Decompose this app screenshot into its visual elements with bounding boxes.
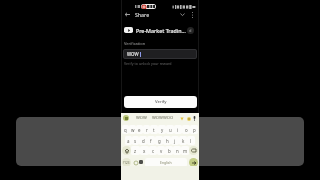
button[interactable]: s xyxy=(132,136,139,145)
staticText: Verification xyxy=(124,41,146,46)
button[interactable]: Channel avatar xyxy=(187,27,194,34)
button[interactable]: n xyxy=(173,146,181,155)
staticText: r xyxy=(146,127,148,133)
staticText: j xyxy=(174,138,176,144)
button[interactable]: o xyxy=(182,125,190,134)
button[interactable]: Back xyxy=(123,10,132,19)
button[interactable]: e xyxy=(136,125,143,134)
staticText: WOW xyxy=(127,51,139,57)
staticText: WOW xyxy=(136,115,147,121)
staticText: f xyxy=(150,138,152,144)
button[interactable]: z xyxy=(131,146,140,155)
button[interactable]: f xyxy=(147,136,155,145)
button[interactable]: Clipboard xyxy=(139,160,143,164)
staticText: WOWWOO xyxy=(152,115,174,121)
button[interactable]: w xyxy=(129,125,136,134)
staticText: n xyxy=(176,148,179,154)
button[interactable]: More options xyxy=(188,10,197,19)
button[interactable]: r xyxy=(143,125,150,134)
staticText: x xyxy=(143,148,146,154)
button[interactable]: c xyxy=(149,146,157,155)
button[interactable]: Google xyxy=(123,115,129,121)
staticText: Verify xyxy=(155,99,167,105)
button[interactable]: Sticker xyxy=(179,116,184,121)
staticText: Pre-Market Tradin… xyxy=(136,27,186,34)
staticText: p xyxy=(193,127,196,133)
staticText: Verify to unlock your reward xyxy=(124,61,172,66)
staticText: v xyxy=(160,148,163,154)
button[interactable]: Enter xyxy=(189,158,198,167)
staticText: u xyxy=(169,127,172,133)
button[interactable]: j xyxy=(171,136,179,145)
staticText: h xyxy=(166,138,169,144)
staticText: a xyxy=(127,138,130,144)
button[interactable]: Backspace xyxy=(189,146,198,155)
staticText: t xyxy=(153,127,155,133)
button[interactable]: i xyxy=(174,125,182,134)
staticText: y xyxy=(161,127,164,133)
staticText: d xyxy=(189,28,192,33)
button[interactable]: k xyxy=(179,136,187,145)
staticText: d xyxy=(142,138,145,144)
staticText: m xyxy=(183,148,188,154)
button[interactable]: Voice input xyxy=(192,116,197,121)
button[interactable]: g xyxy=(155,136,163,145)
button[interactable]: v xyxy=(157,146,165,155)
button[interactable]: a xyxy=(125,136,132,145)
button[interactable]: Emoji xyxy=(133,160,138,165)
button[interactable]: h xyxy=(163,136,171,145)
button[interactable]: u xyxy=(166,125,174,134)
button[interactable]: q xyxy=(122,125,129,134)
button[interactable]: Verify xyxy=(124,96,197,108)
staticText: k xyxy=(182,138,185,144)
staticText: b xyxy=(168,148,171,154)
button[interactable]: x xyxy=(140,146,149,155)
button[interactable]: Pre-Market Tradin… xyxy=(124,23,196,37)
button[interactable]: d xyxy=(139,136,147,145)
staticText: e xyxy=(138,127,141,133)
staticText: o xyxy=(185,127,188,133)
button[interactable]: Collapse xyxy=(178,10,187,19)
staticText: i xyxy=(177,127,179,133)
button[interactable]: t xyxy=(150,125,158,134)
button[interactable]: l xyxy=(187,136,195,145)
button[interactable]: b xyxy=(165,146,173,155)
button[interactable]: ?123 xyxy=(122,158,131,167)
staticText: q xyxy=(124,127,127,133)
staticText: l xyxy=(190,138,192,144)
button[interactable]: m xyxy=(181,146,189,155)
staticText: z xyxy=(134,148,137,154)
staticText: ?123 xyxy=(123,161,130,165)
staticText: g xyxy=(158,138,161,144)
staticText: w xyxy=(131,127,135,133)
staticText: Share xyxy=(135,11,150,18)
button[interactable]: English xyxy=(145,158,187,167)
button[interactable]: Shift xyxy=(122,146,131,155)
staticText: English xyxy=(160,160,172,165)
button[interactable]: WOW xyxy=(123,49,197,59)
button[interactable]: Emoji xyxy=(186,116,191,121)
staticText: c xyxy=(152,148,155,154)
staticText: s xyxy=(134,138,137,144)
button[interactable]: p xyxy=(190,125,198,134)
button[interactable]: y xyxy=(158,125,166,134)
